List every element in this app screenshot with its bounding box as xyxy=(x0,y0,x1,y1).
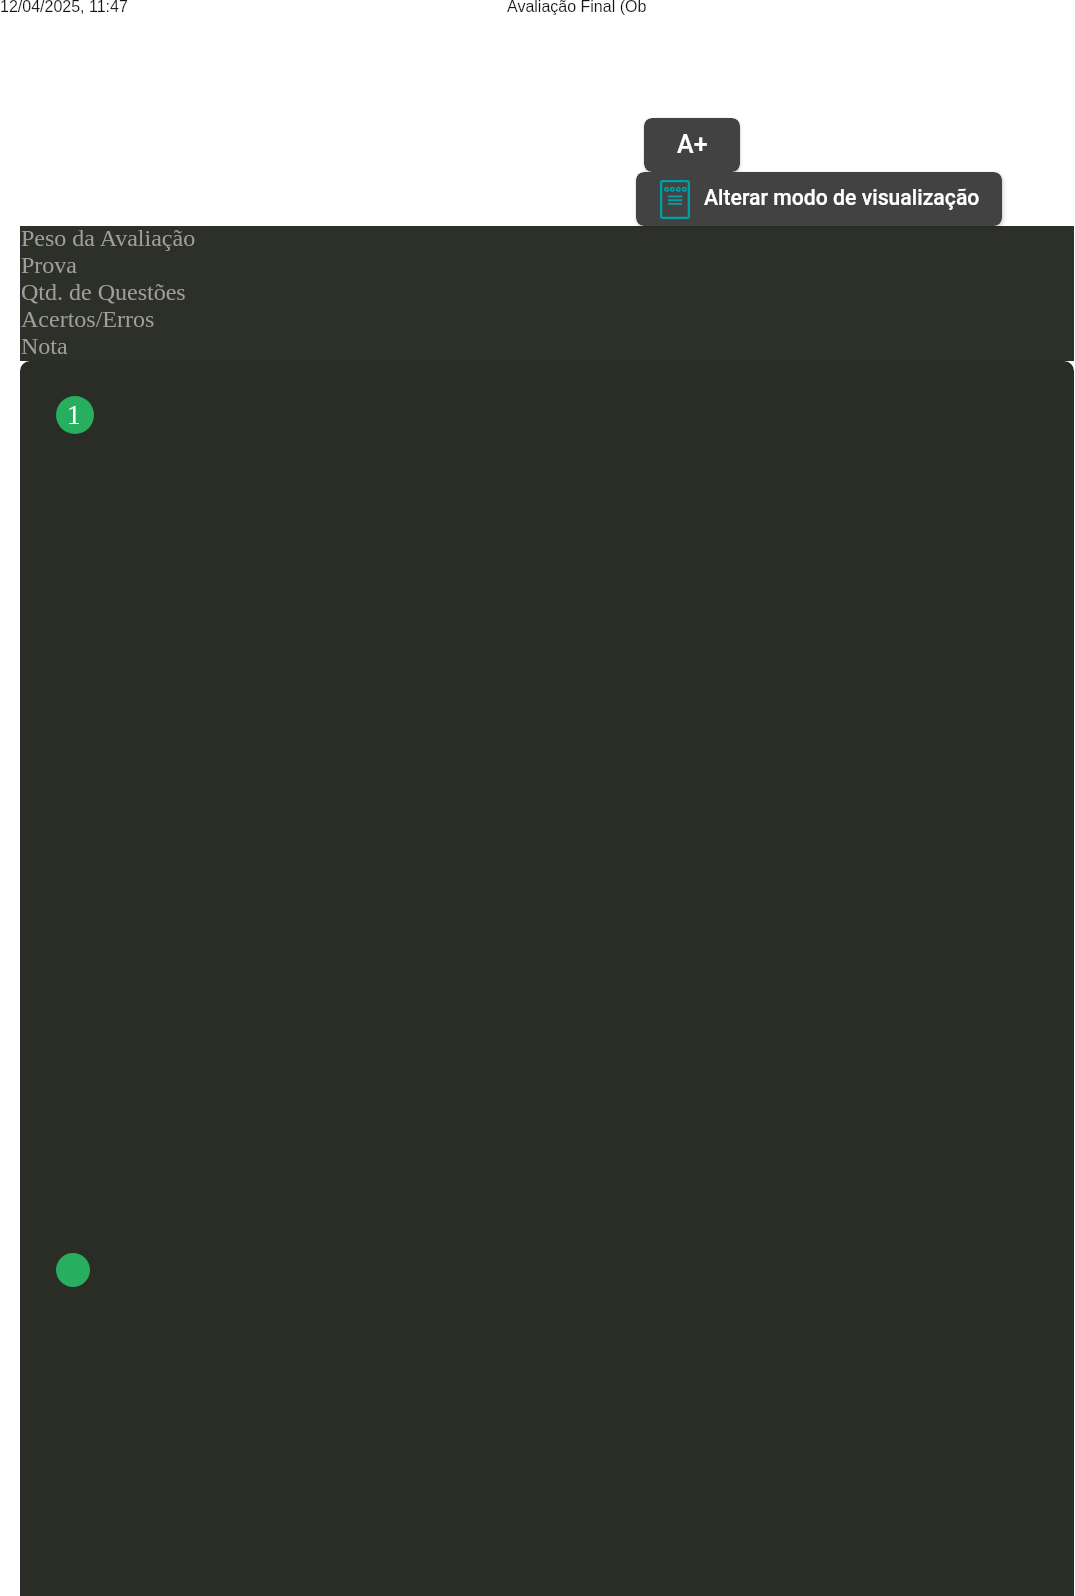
button[interactable]: A+ xyxy=(644,118,740,172)
staticText: Qtd. de Questões xyxy=(21,279,186,306)
staticText: Nota xyxy=(21,333,68,360)
button[interactable]: Status xyxy=(56,1253,90,1287)
button[interactable]: Alterar modo de visualização xyxy=(636,172,1002,226)
staticText: 12/04/2025, 11:47 xyxy=(0,0,128,16)
staticText: A+ xyxy=(677,130,708,159)
staticText: Alterar modo de visualização xyxy=(704,185,980,210)
other: Alterar modo de visualização xyxy=(660,180,690,219)
staticText: 1 xyxy=(67,400,81,430)
staticText: Avaliação Final (Ob xyxy=(507,0,647,16)
staticText: Peso da Avaliação xyxy=(21,225,196,252)
staticText: Prova xyxy=(21,252,77,279)
staticText: Acertos/Erros xyxy=(21,306,155,333)
button[interactable]: 1 xyxy=(56,396,94,434)
